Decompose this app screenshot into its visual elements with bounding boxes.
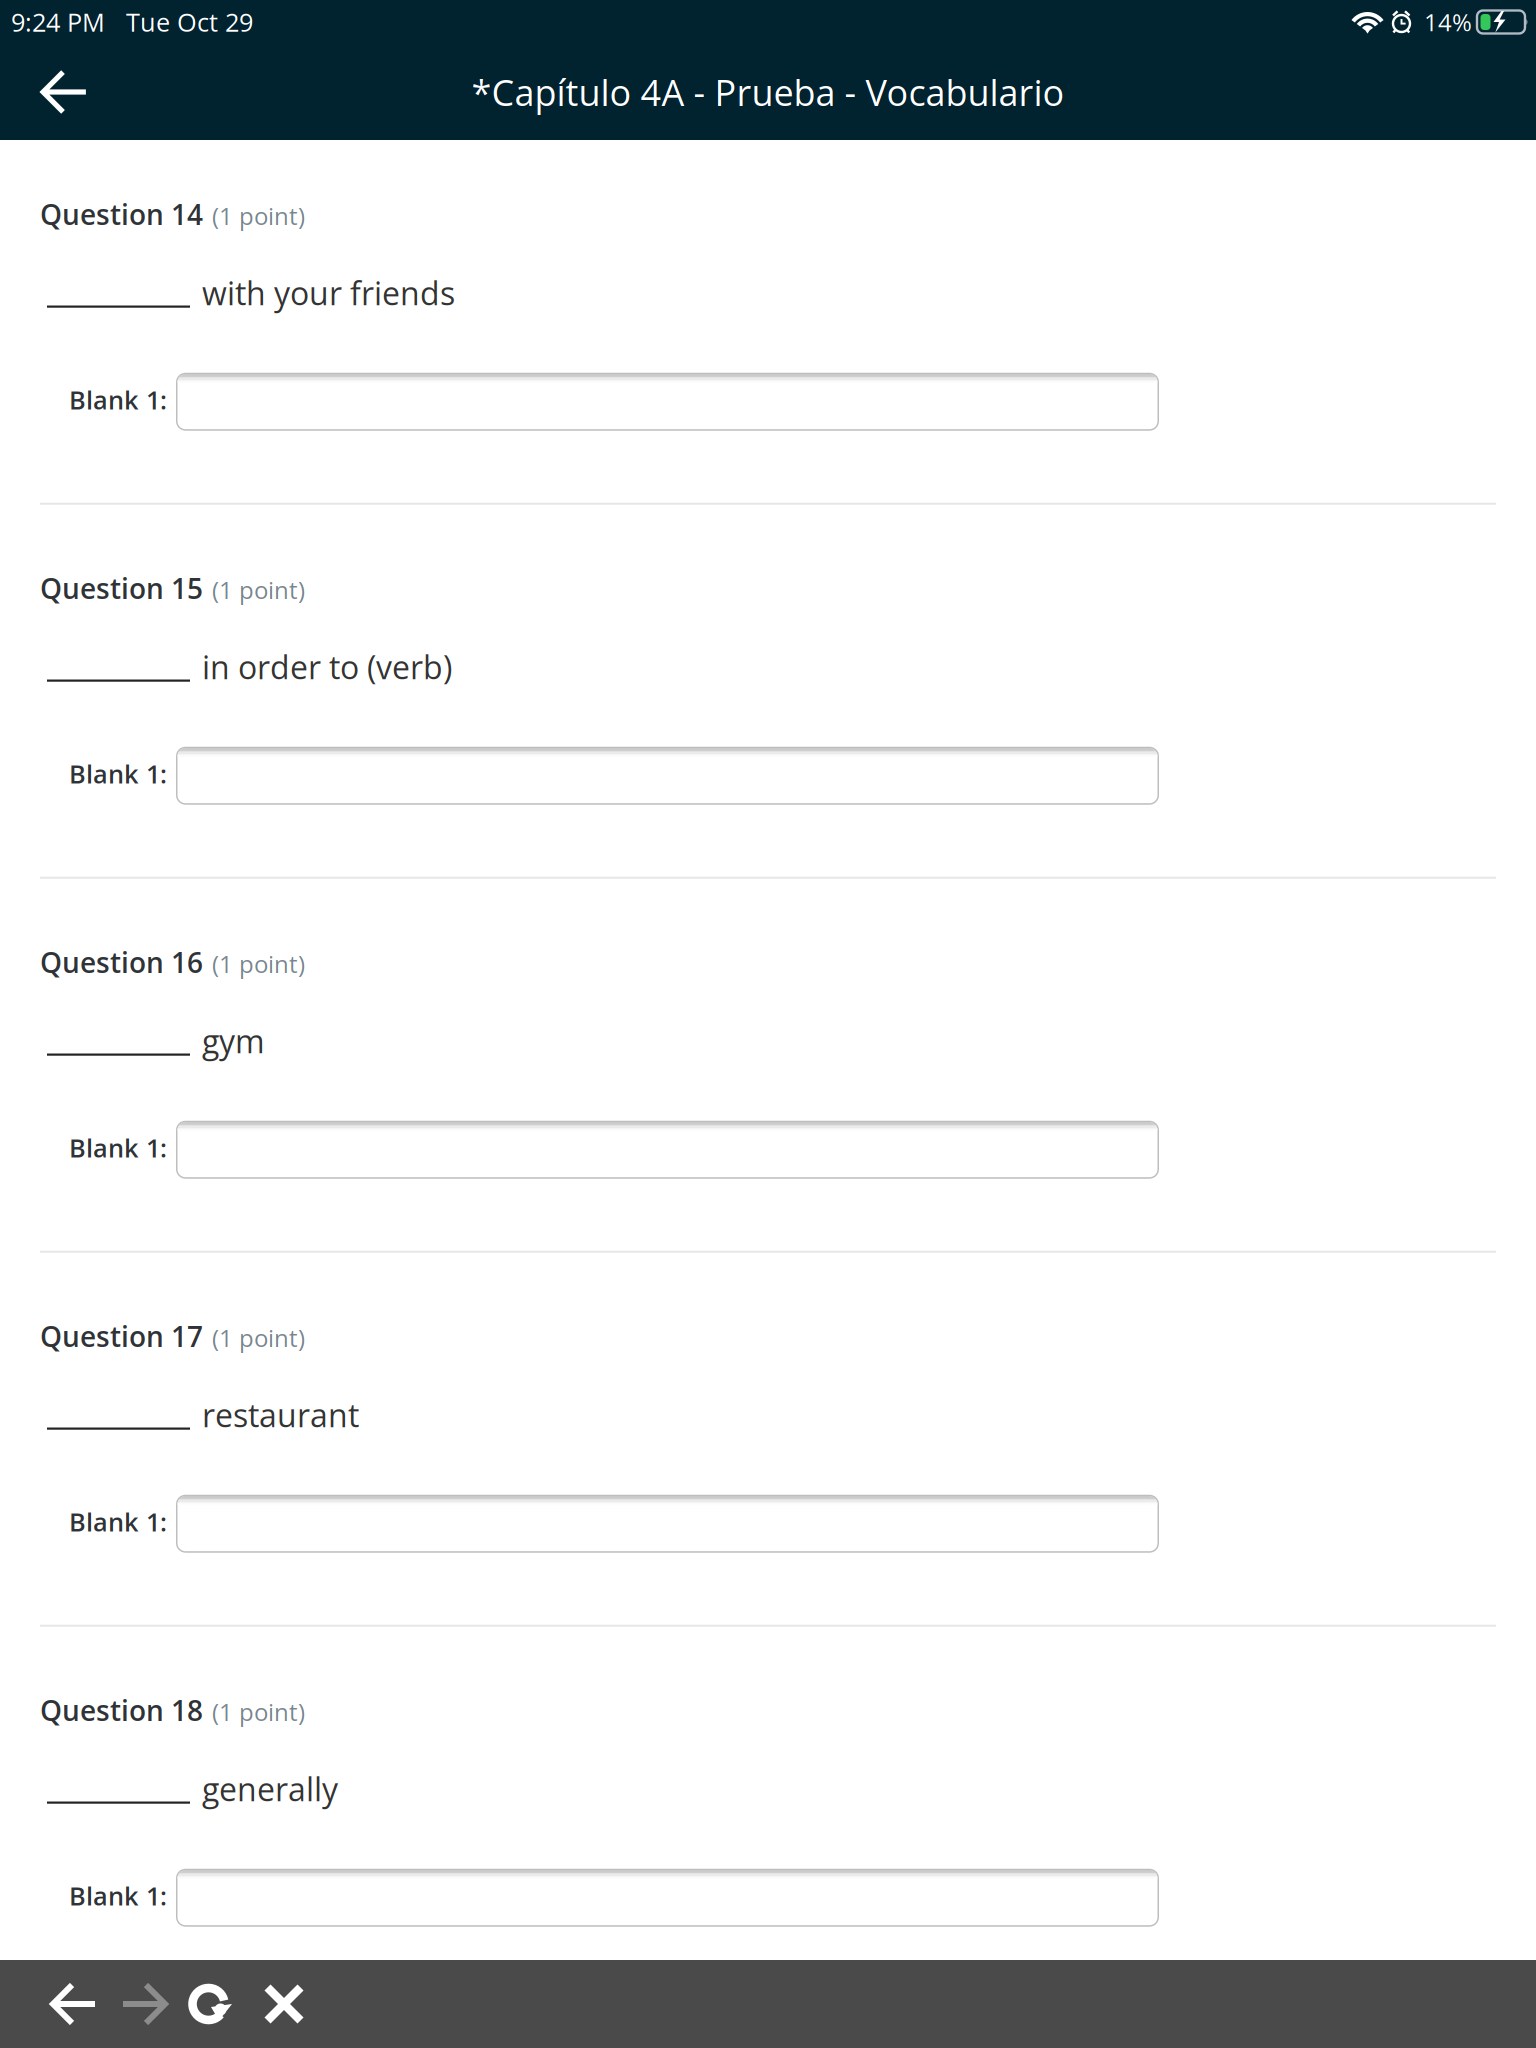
button[interactable]: Back bbox=[0, 44, 129, 140]
staticText: Blank 1: bbox=[69, 1130, 167, 1165]
staticText: Tue Oct 29 bbox=[126, 5, 253, 39]
staticText: (1 point) bbox=[212, 573, 305, 606]
staticText: 9:24 PM bbox=[11, 5, 105, 39]
staticText: Blank 1: bbox=[69, 756, 167, 791]
staticText: Question 16 bbox=[40, 943, 203, 981]
staticText: (1 point) bbox=[212, 1321, 305, 1354]
staticText: Blank 1: bbox=[69, 1504, 167, 1539]
staticText: gym bbox=[202, 1019, 265, 1063]
staticText: *Capítulo 4A - Prueba - Vocabulario bbox=[471, 67, 1064, 116]
staticText: (1 point) bbox=[212, 199, 305, 232]
staticText: Question 17 bbox=[40, 1317, 203, 1355]
staticText: in order to (verb) bbox=[202, 645, 452, 689]
staticText: restaurant bbox=[202, 1393, 359, 1437]
button[interactable]: Back bbox=[39, 1960, 109, 2048]
button[interactable]: Forward bbox=[109, 1960, 179, 2048]
staticText: (1 point) bbox=[212, 947, 305, 980]
staticText: with your friends bbox=[202, 271, 455, 315]
staticText: Blank 1: bbox=[69, 1878, 167, 1913]
staticText: (1 point) bbox=[212, 1695, 305, 1728]
staticText: 14% bbox=[1424, 6, 1472, 38]
staticText: generally bbox=[202, 1767, 338, 1811]
staticText: Question 15 bbox=[40, 569, 203, 607]
button[interactable]: Close bbox=[249, 1960, 319, 2048]
staticText: Question 18 bbox=[40, 1691, 203, 1729]
staticText: Blank 1: bbox=[69, 382, 167, 417]
button[interactable]: Reload bbox=[179, 1960, 249, 2048]
staticText: Question 14 bbox=[40, 195, 203, 233]
